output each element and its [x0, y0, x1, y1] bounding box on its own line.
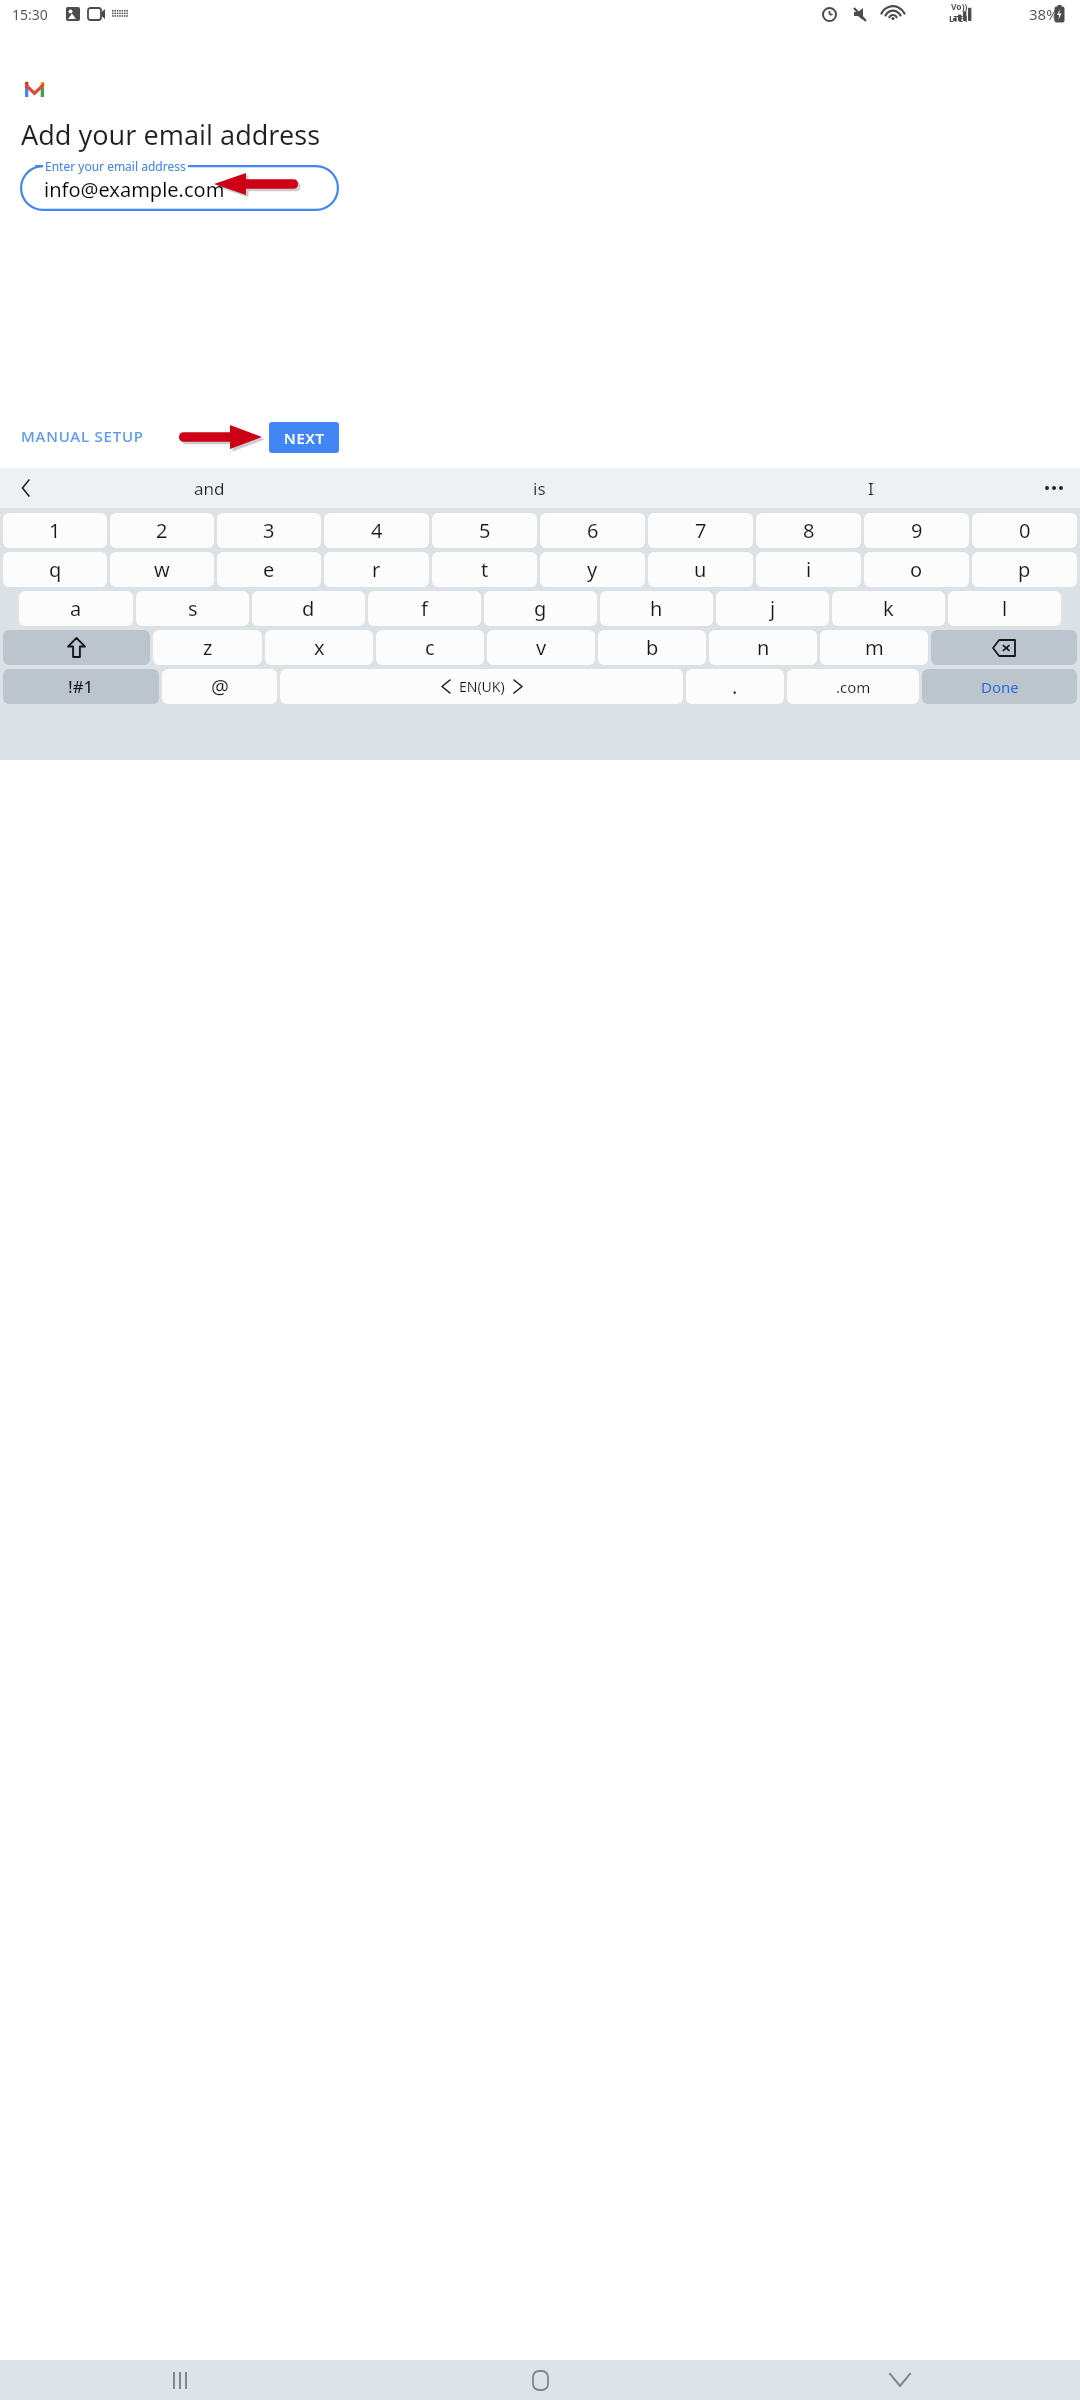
staticText: o [910, 556, 923, 583]
staticText: w [154, 556, 170, 583]
button[interactable]: Previous suggestions [8, 470, 44, 506]
staticText: 0 [1019, 517, 1031, 544]
button[interactable]: o [864, 552, 969, 587]
button[interactable]: k [832, 591, 945, 626]
button[interactable]: 4 [324, 513, 429, 548]
staticText: @ [211, 673, 229, 700]
button[interactable]: Done [922, 669, 1077, 704]
button[interactable]: s [136, 591, 249, 626]
staticText: c [425, 634, 435, 661]
button[interactable]: 1 [3, 513, 107, 548]
button[interactable]: d [252, 591, 365, 626]
button[interactable]: is [374, 468, 705, 508]
button[interactable]: 8 [756, 513, 861, 548]
staticText: EN(UK) [459, 677, 505, 696]
staticText: r [372, 556, 381, 583]
staticText: t [481, 556, 489, 583]
staticText: d [302, 595, 315, 622]
staticText: q [49, 556, 62, 583]
staticText: 6 [587, 517, 599, 544]
button[interactable]: e [217, 552, 321, 587]
staticText: 8 [803, 517, 815, 544]
button[interactable]: y [540, 552, 645, 587]
staticText: is [533, 477, 546, 500]
staticText: Enter your email address [45, 158, 186, 174]
button[interactable]: n [709, 630, 817, 665]
staticText: a [70, 595, 82, 622]
button[interactable]: z [153, 630, 262, 665]
button[interactable]: Hide keyboard [720, 2360, 1080, 2400]
staticText: z [203, 634, 213, 661]
button[interactable]: x [265, 630, 373, 665]
button[interactable]: w [110, 552, 214, 587]
staticText: u [694, 556, 707, 583]
staticText: y [587, 556, 598, 583]
button[interactable]: p [972, 552, 1077, 587]
staticText: MANUAL SETUP [21, 426, 144, 446]
button[interactable]: 0 [972, 513, 1077, 548]
staticText: !#1 [68, 675, 94, 698]
button[interactable]: NEXT [269, 422, 339, 453]
button[interactable]: j [716, 591, 829, 626]
staticText: Vo)) [951, 1, 968, 13]
button[interactable]: Enter your email address [20, 165, 339, 211]
button[interactable]: m [820, 630, 928, 665]
button[interactable]: !#1 [3, 669, 159, 704]
staticText: 5 [479, 517, 491, 544]
button[interactable]: .com [787, 669, 919, 704]
staticText: Add your email address [21, 116, 321, 153]
button[interactable]: and [44, 468, 374, 508]
button[interactable]: Home [360, 2360, 720, 2400]
staticText: x [314, 634, 325, 661]
staticText: l [1002, 595, 1008, 622]
button[interactable]: 2 [110, 513, 214, 548]
button[interactable]: f [368, 591, 481, 626]
button[interactable]: a [19, 591, 133, 626]
button[interactable]: u [648, 552, 753, 587]
staticText: g [534, 595, 547, 622]
staticText: f [421, 595, 428, 622]
staticText: m [865, 634, 884, 661]
button[interactable]: i [756, 552, 861, 587]
staticText: 38% [1029, 4, 1059, 24]
staticText: v [536, 634, 547, 661]
staticText: 7 [695, 517, 707, 544]
button[interactable]: 9 [864, 513, 969, 548]
button[interactable]: Recents [0, 2360, 360, 2400]
staticText: p [1018, 556, 1031, 583]
button[interactable]: MANUAL SETUP [21, 426, 144, 446]
staticText: NEXT [284, 428, 325, 448]
button[interactable]: v [487, 630, 595, 665]
button[interactable]: 7 [648, 513, 753, 548]
staticText: b [646, 634, 659, 661]
staticText: k [883, 595, 894, 622]
button[interactable]: @ [162, 669, 277, 704]
staticText: LTE1 [949, 13, 969, 25]
button[interactable]: 3 [217, 513, 321, 548]
staticText: 3 [263, 517, 275, 544]
button[interactable]: EN(UK) [280, 669, 683, 704]
staticText: e [263, 556, 275, 583]
staticText: I [868, 477, 874, 500]
staticText: 15:30 [12, 5, 48, 24]
button[interactable]: g [484, 591, 597, 626]
staticText: .com [836, 677, 871, 697]
button[interactable]: l [948, 591, 1061, 626]
staticText: 2 [156, 517, 168, 544]
button[interactable]: t [432, 552, 537, 587]
button[interactable]: Backspace [931, 630, 1077, 665]
staticText: j [770, 595, 776, 622]
button[interactable]: c [376, 630, 484, 665]
button[interactable]: 6 [540, 513, 645, 548]
button[interactable]: q [3, 552, 107, 587]
staticText: h [650, 595, 663, 622]
button[interactable]: h [600, 591, 713, 626]
staticText: info@example.com [44, 176, 225, 203]
button[interactable]: . [686, 669, 784, 704]
button[interactable]: r [324, 552, 429, 587]
button[interactable]: b [598, 630, 706, 665]
button[interactable]: 5 [432, 513, 537, 548]
button[interactable]: I [705, 468, 1036, 508]
button[interactable]: Shift [3, 630, 150, 665]
button[interactable]: More options [1036, 470, 1072, 506]
